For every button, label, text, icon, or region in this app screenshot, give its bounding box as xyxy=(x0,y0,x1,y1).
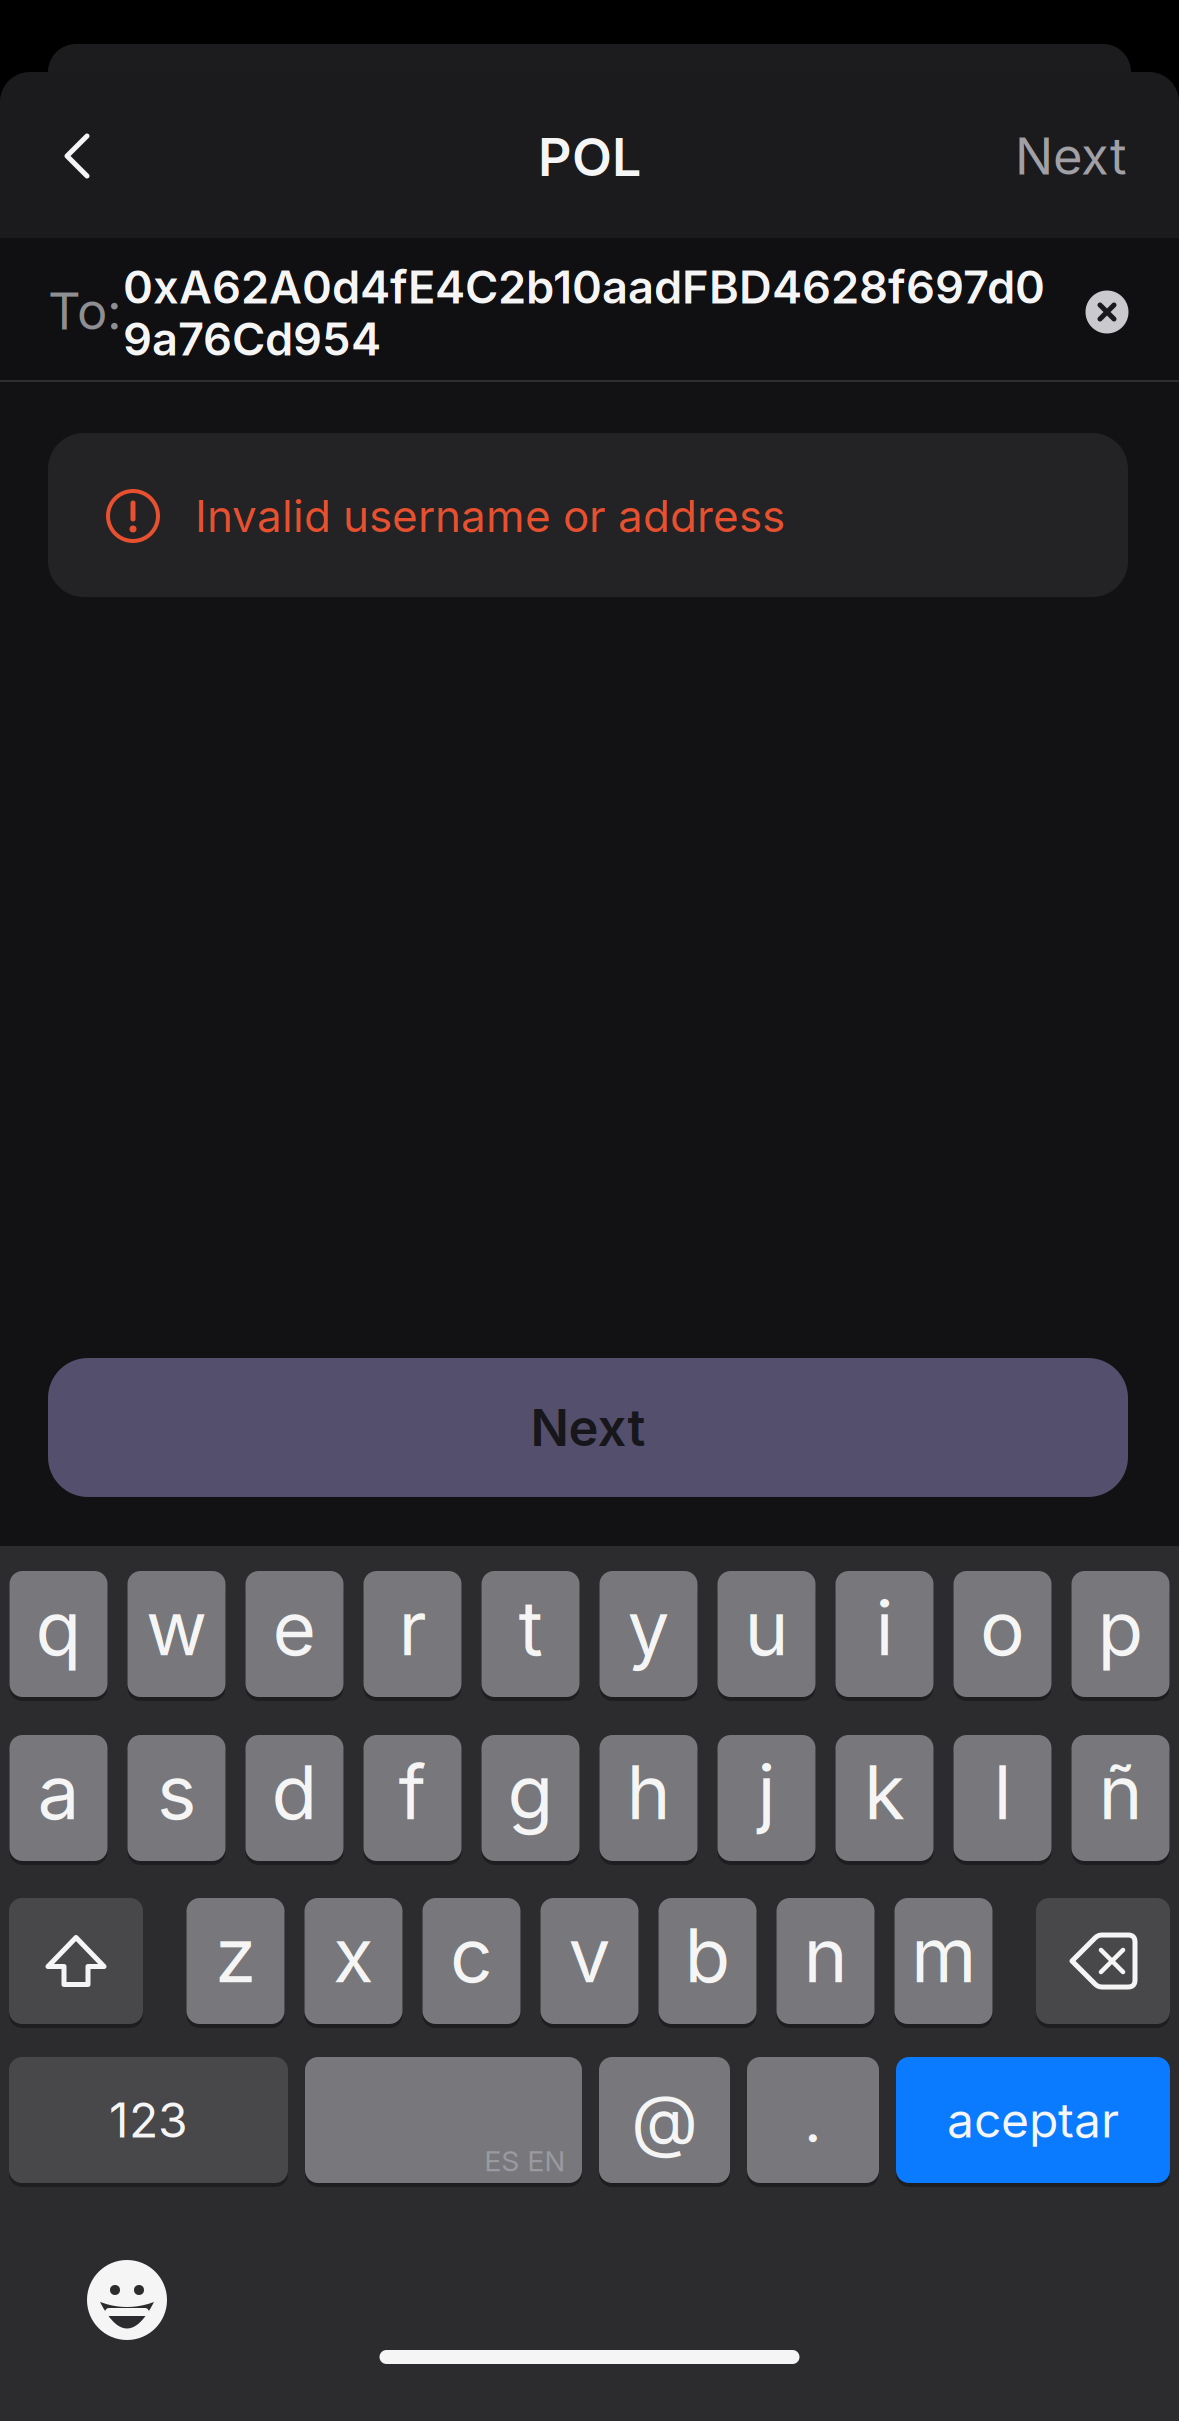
staticText: o xyxy=(980,1584,1025,1672)
button[interactable]: b xyxy=(658,1898,756,2024)
staticText: ES EN xyxy=(484,2144,565,2177)
button[interactable]: aceptar xyxy=(896,2057,1170,2183)
staticText: z xyxy=(215,1911,256,1999)
button[interactable]: y xyxy=(599,1571,697,1697)
staticText: m xyxy=(911,1911,976,1999)
staticText: POL xyxy=(538,126,641,188)
staticText: To: xyxy=(48,281,122,341)
staticText: c xyxy=(450,1911,493,1999)
button[interactable]: z xyxy=(186,1898,284,2024)
staticText: t xyxy=(518,1584,542,1672)
button[interactable]: l xyxy=(953,1735,1051,1861)
button[interactable]: o xyxy=(953,1571,1051,1697)
staticText: a xyxy=(37,1748,79,1836)
button[interactable]: h xyxy=(599,1735,697,1861)
button[interactable]: p xyxy=(1071,1571,1169,1697)
button[interactable]: Emoji xyxy=(87,2260,167,2340)
button[interactable]: ñ xyxy=(1071,1735,1169,1861)
button[interactable]: i xyxy=(835,1571,933,1697)
button[interactable]: n xyxy=(776,1898,874,2024)
button[interactable]: Space xyxy=(305,2057,582,2183)
staticText: v xyxy=(568,1911,610,1999)
button[interactable]: c xyxy=(422,1898,520,2024)
staticText: g xyxy=(507,1748,553,1836)
staticText: f xyxy=(398,1748,426,1836)
button[interactable]: j xyxy=(717,1735,815,1861)
button[interactable]: v xyxy=(540,1898,638,2024)
button[interactable]: s xyxy=(127,1735,225,1861)
staticText: j xyxy=(757,1748,775,1836)
staticText: e xyxy=(272,1584,316,1672)
button[interactable]: @ xyxy=(599,2057,730,2183)
staticText: n xyxy=(803,1911,847,1999)
button[interactable]: f xyxy=(363,1735,461,1861)
staticText: d xyxy=(271,1748,317,1836)
staticText: ñ xyxy=(1098,1748,1142,1836)
button[interactable]: q xyxy=(9,1571,107,1697)
button[interactable]: Clear address xyxy=(1085,290,1128,333)
button[interactable]: Shift xyxy=(9,1898,143,2024)
button[interactable]: Back xyxy=(42,121,112,191)
staticText: Next xyxy=(1015,126,1127,186)
button[interactable]: . xyxy=(747,2057,879,2183)
staticText: h xyxy=(626,1748,670,1836)
staticText: x xyxy=(333,1911,374,1999)
button[interactable]: Next xyxy=(48,1358,1128,1497)
button[interactable]: r xyxy=(363,1571,461,1697)
staticText: q xyxy=(35,1584,81,1672)
button[interactable]: x xyxy=(304,1898,402,2024)
staticText: . xyxy=(804,2084,822,2156)
button[interactable]: g xyxy=(481,1735,579,1861)
staticText: r xyxy=(398,1584,426,1672)
button[interactable]: d xyxy=(245,1735,343,1861)
staticText: Next xyxy=(530,1398,645,1457)
staticText: k xyxy=(864,1748,905,1836)
button[interactable]: m xyxy=(894,1898,992,2024)
staticText: w xyxy=(146,1584,207,1672)
staticText: aceptar xyxy=(947,2092,1119,2148)
staticText: l xyxy=(993,1748,1011,1836)
button[interactable]: k xyxy=(835,1735,933,1861)
button[interactable]: a xyxy=(9,1735,107,1861)
staticText: y xyxy=(627,1584,669,1672)
staticText: 123 xyxy=(109,2092,188,2148)
button[interactable]: Next xyxy=(1015,126,1127,186)
staticText: i xyxy=(875,1584,893,1672)
staticText: p xyxy=(1097,1584,1143,1672)
button[interactable]: u xyxy=(717,1571,815,1697)
staticText: 0xA62A0d4fE4C2b10aadFBD4628f697d0 xyxy=(123,260,1045,314)
button[interactable]: e xyxy=(245,1571,343,1697)
button[interactable]: w xyxy=(127,1571,225,1697)
button[interactable]: 123 xyxy=(9,2057,288,2183)
staticText: @ xyxy=(631,2079,698,2161)
staticText: b xyxy=(684,1911,730,1999)
staticText: Invalid username or address xyxy=(195,490,785,542)
staticText: 9a76Cd954 xyxy=(123,312,381,366)
staticText: s xyxy=(157,1748,196,1836)
staticText: u xyxy=(744,1584,788,1672)
button[interactable]: t xyxy=(481,1571,579,1697)
button[interactable]: Delete xyxy=(1036,1898,1170,2024)
